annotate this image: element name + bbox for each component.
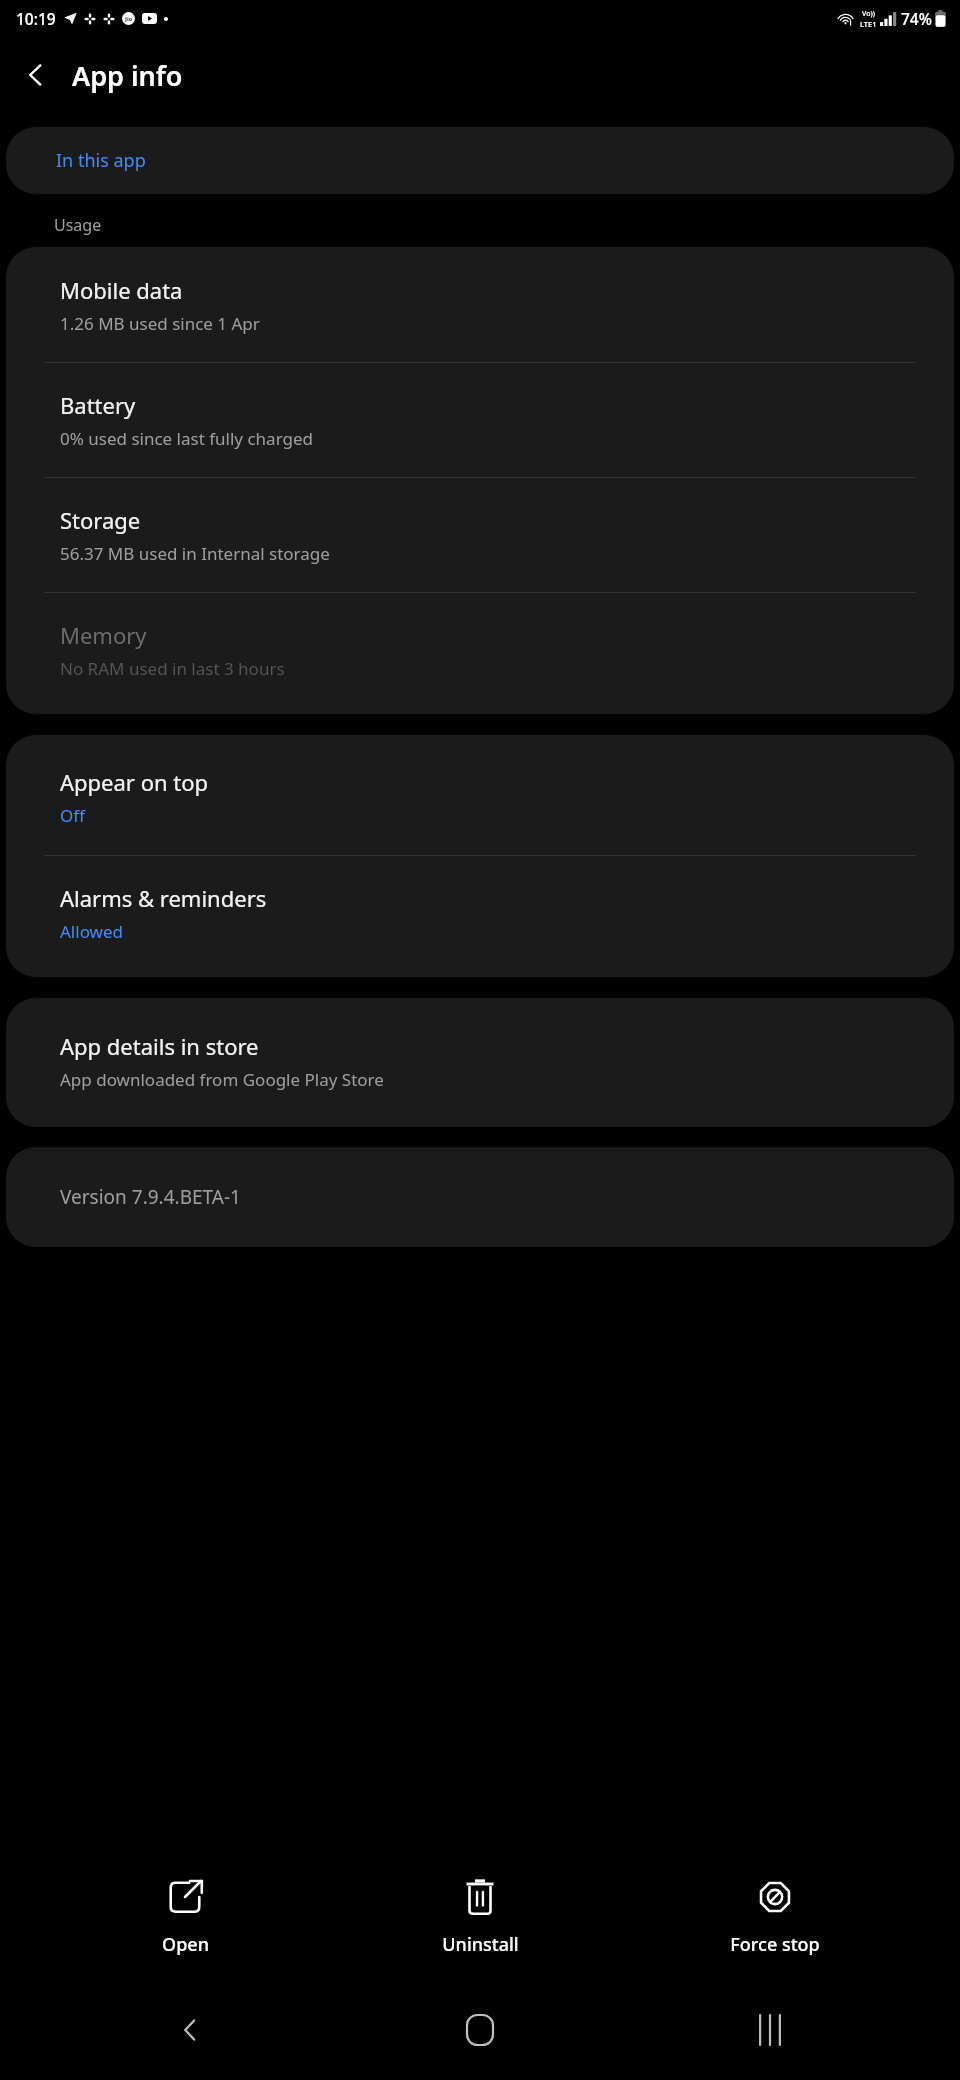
staticText: Allowed: [60, 920, 123, 943]
staticText: Alarms & reminders: [60, 883, 267, 913]
staticText: App downloaded from Google Play Store: [60, 1068, 384, 1091]
staticText: Mobile data: [60, 275, 183, 305]
staticText: Storage: [60, 505, 141, 535]
staticText: 74%: [901, 8, 932, 29]
staticText: No RAM used in last 3 hours: [60, 657, 285, 680]
staticText: 0% used since last fully charged: [60, 427, 313, 450]
staticText: 1.26 MB used since 1 Apr: [60, 312, 260, 335]
button[interactable]: Force stop: [665, 1866, 885, 1967]
staticText: Appear on top: [60, 767, 209, 797]
button[interactable]: Back: [90, 1980, 290, 2080]
button[interactable]: Recent apps: [670, 1980, 870, 2080]
button[interactable]: Uninstall: [370, 1866, 590, 1967]
staticText: Off: [60, 804, 85, 827]
staticText: 56.37 MB used in Internal storage: [60, 542, 330, 565]
staticText: Uninstall: [442, 1932, 519, 1957]
staticText: 10:19: [16, 8, 56, 29]
button[interactable]: Memory: [6, 593, 954, 714]
button[interactable]: App details in store: [6, 998, 954, 1127]
button[interactable]: Appear on top: [6, 735, 954, 855]
button[interactable]: Back: [0, 37, 72, 113]
button[interactable]: Home: [380, 1980, 580, 2080]
staticText: Vo)): [862, 9, 875, 19]
staticText: Force stop: [730, 1932, 820, 1957]
button[interactable]: Alarms & reminders: [6, 856, 954, 977]
button[interactable]: Mobile data: [6, 247, 954, 362]
staticText: App details in store: [60, 1031, 259, 1061]
staticText: In this app: [56, 148, 146, 173]
staticText: Version 7.9.4.BETA-1: [60, 1184, 241, 1210]
button[interactable]: Battery: [6, 363, 954, 477]
staticText: LTE1: [860, 19, 877, 29]
button[interactable]: Open: [75, 1866, 295, 1967]
staticText: Battery: [60, 390, 136, 420]
staticText: Memory: [60, 620, 147, 650]
button[interactable]: In this app: [6, 127, 954, 194]
staticText: Open: [162, 1932, 209, 1957]
staticText: Usage: [54, 214, 102, 236]
staticText: Jio: [125, 15, 133, 23]
staticText: App info: [72, 57, 183, 94]
button[interactable]: Storage: [6, 478, 954, 592]
